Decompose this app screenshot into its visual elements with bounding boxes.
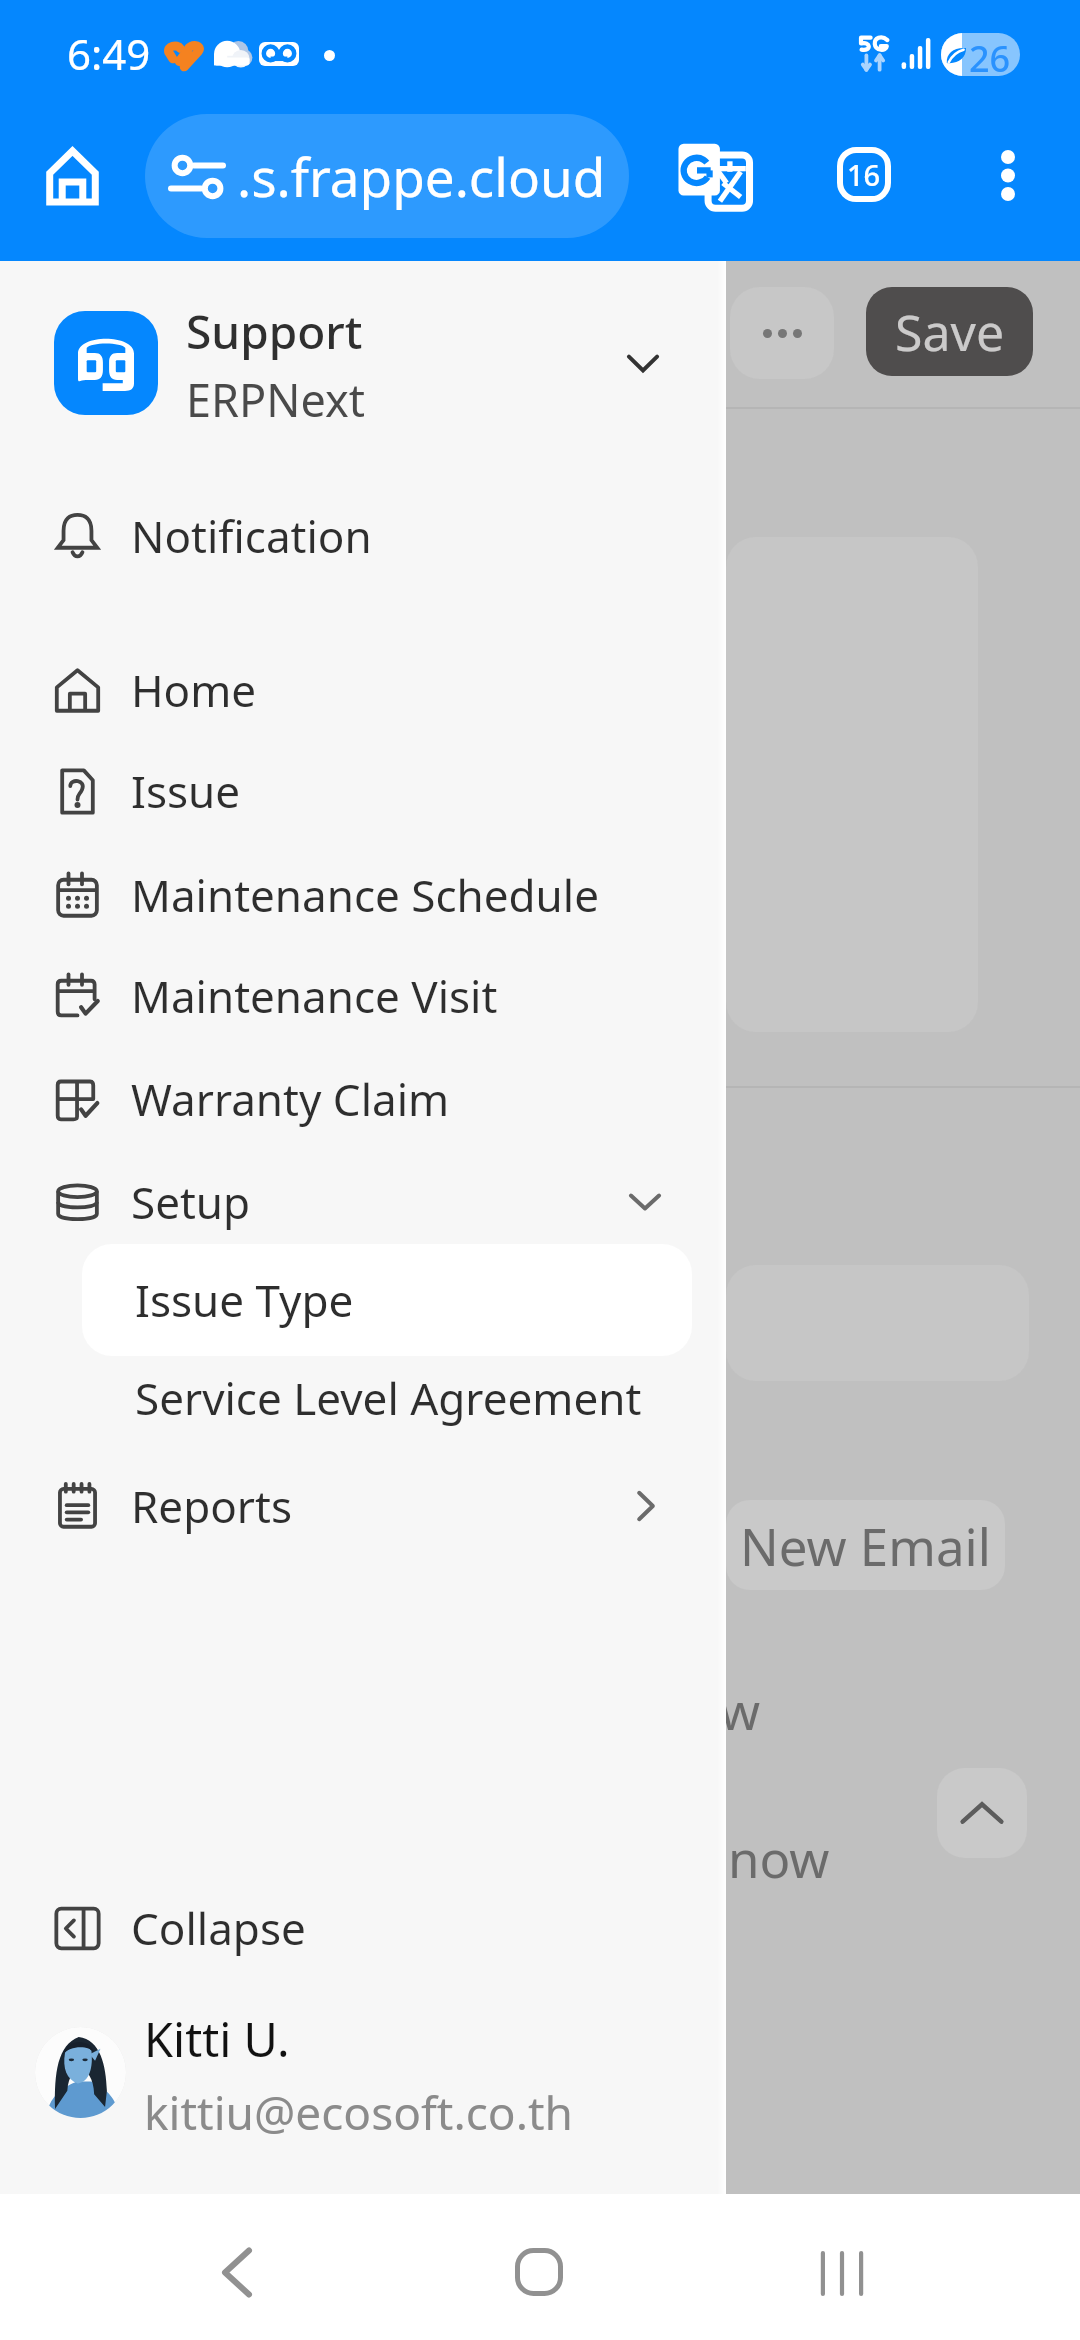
staticText: w (720, 1675, 761, 1744)
staticText: ERPNext (186, 369, 365, 426)
staticText: Setup (131, 1172, 251, 1232)
button[interactable]: Maintenance Schedule (0, 844, 726, 946)
staticText: kittiu@ecosoft.co.th (144, 2081, 574, 2137)
button[interactable]: More options (955, 122, 1061, 228)
button[interactable]: Reports (0, 1455, 726, 1557)
button[interactable]: Save (866, 287, 1033, 376)
button[interactable]: Translate page (660, 122, 768, 230)
staticText: Warranty Claim (131, 1069, 450, 1129)
button[interactable]: .s.frappe.cloud (145, 114, 629, 238)
staticText: 6:49 (67, 25, 151, 82)
staticText: Save (895, 298, 1005, 366)
button[interactable]: Recent apps (782, 2213, 902, 2333)
button[interactable]: Issue (0, 740, 726, 842)
button[interactable]: Issue Type (82, 1244, 692, 1356)
button[interactable]: Home (479, 2212, 599, 2332)
staticText: Notification (131, 506, 372, 566)
button[interactable]: Warranty Claim (0, 1048, 726, 1150)
staticText: Support (186, 300, 363, 363)
button[interactable]: Scroll to top (937, 1768, 1027, 1858)
button[interactable]: Notification (0, 485, 726, 587)
staticText: now (728, 1823, 830, 1892)
button[interactable]: Back (177, 2212, 297, 2332)
button[interactable]: Collapse (0, 1877, 726, 1979)
staticText: 26 (969, 34, 1011, 76)
staticText: .s.frappe.cloud (237, 140, 606, 212)
staticText: Collapse (131, 1898, 306, 1958)
button[interactable]: More (730, 287, 834, 379)
staticText: Service Level Agreement (135, 1368, 642, 1428)
staticText: Maintenance Schedule (131, 865, 599, 925)
button[interactable]: Kitti U. (0, 2007, 726, 2137)
button[interactable]: Switch tabs (837, 147, 891, 202)
button[interactable]: New Email (726, 1500, 1005, 1590)
button[interactable]: Home (24, 128, 120, 224)
button[interactable]: Service Level Agreement (82, 1357, 692, 1439)
button[interactable]: Home (0, 639, 726, 741)
button[interactable]: Support (0, 300, 726, 426)
staticText: Kitti U. (144, 2007, 290, 2071)
staticText: Issue Type (135, 1270, 354, 1330)
staticText: Maintenance Visit (131, 966, 498, 1026)
button[interactable]: Maintenance Visit (0, 945, 726, 1047)
staticText: New Email (740, 1511, 991, 1580)
staticText: Reports (131, 1476, 292, 1536)
staticText: Issue (131, 761, 241, 821)
staticText: Home (131, 660, 257, 720)
staticText: 16 (847, 155, 881, 194)
button[interactable]: Setup (0, 1151, 726, 1253)
